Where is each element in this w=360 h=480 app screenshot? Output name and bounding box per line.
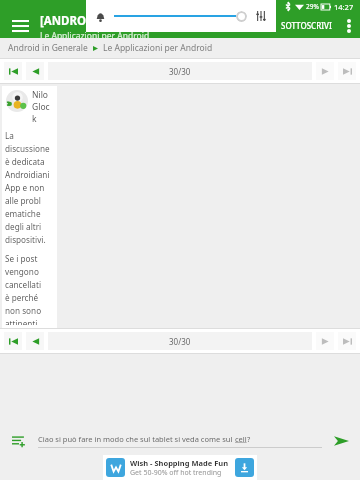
staticText: Android in Generale	[8, 42, 88, 54]
button[interactable]: Android in Generale	[0, 38, 360, 58]
staticText: [ANDROIDIANI APP]	[40, 13, 155, 29]
button[interactable]: Page navigation	[316, 332, 334, 350]
staticText: è perché	[5, 292, 39, 303]
staticText: 14:27	[334, 2, 354, 12]
button[interactable]: Page navigation	[338, 62, 356, 80]
button[interactable]: Send reply	[330, 430, 352, 452]
staticText: 30/30	[169, 336, 191, 347]
staticText: Le Applicazioni per Android	[103, 42, 213, 54]
button[interactable]: Wish - Shopping Made Fun	[103, 455, 257, 480]
button[interactable]: Page navigation	[4, 332, 22, 350]
button[interactable]: Page navigation	[338, 332, 356, 350]
staticText: cell	[235, 434, 247, 444]
staticText: discussione	[5, 143, 50, 154]
staticText: 30/30	[169, 66, 191, 77]
button[interactable]: More options	[338, 13, 360, 38]
staticText: vengono	[5, 266, 39, 277]
staticText: Se i post	[5, 253, 38, 264]
staticText: Nilo	[32, 89, 48, 101]
staticText: Androidiani	[5, 169, 50, 180]
button[interactable]: Install app	[235, 458, 254, 477]
staticText: Gloc	[32, 101, 50, 113]
staticText: SOTTOSCRIVI	[281, 20, 332, 31]
button[interactable]: 30/30	[48, 332, 312, 350]
button[interactable]: Page navigation	[26, 332, 44, 350]
button[interactable]: Nilo	[2, 86, 57, 328]
button[interactable]: Page navigation	[316, 62, 334, 80]
staticText: App e non	[5, 182, 45, 193]
staticText: Wish - Shopping Made Fun	[130, 458, 229, 468]
staticText: degli altri	[5, 221, 42, 232]
staticText: Ciao si può fare in modo che sul tablet …	[38, 434, 235, 444]
staticText: k	[32, 113, 37, 125]
staticText: dispositivi.	[5, 234, 46, 245]
staticText: 29%	[306, 2, 319, 11]
staticText: ematiche	[5, 208, 41, 219]
staticText: è dedicata ad	[5, 156, 54, 167]
button[interactable]: Page navigation	[26, 62, 44, 80]
staticText: Le Applicazioni per Android	[40, 30, 150, 38]
staticText: ?	[247, 434, 251, 444]
staticText: alle probl	[5, 195, 41, 206]
button[interactable]: Volume slider	[236, 11, 247, 22]
button[interactable]: SOTTOSCRIVI	[275, 13, 338, 38]
button[interactable]: 30/30	[48, 62, 312, 80]
button[interactable]: Ciao si può fare in modo che sul tablet …	[38, 434, 322, 448]
staticText: cancellati	[5, 279, 42, 290]
button[interactable]: Expand volume settings	[253, 8, 269, 24]
staticText: La	[5, 130, 14, 141]
button[interactable]: Open navigation menu	[0, 13, 40, 38]
staticText: non sono	[5, 305, 42, 316]
button[interactable]: Ringer volume	[86, 0, 276, 32]
other: Ringer volume	[93, 9, 107, 23]
staticText: attinenti,	[5, 318, 40, 325]
button[interactable]: Page navigation	[4, 62, 22, 80]
button[interactable]: Quick reply options	[8, 430, 30, 452]
staticText: Get 50-90% off hot trending	[130, 468, 222, 478]
